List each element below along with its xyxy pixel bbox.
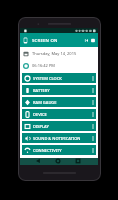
button[interactable]: SCREEN ON [20, 33, 98, 47]
button[interactable]: DEVICE [22, 109, 96, 119]
button[interactable]: RAM GAUGE [22, 97, 96, 107]
staticText: SOUND & NOTIFICATION [33, 136, 81, 141]
button[interactable]: Pause [84, 36, 89, 45]
staticText: BATTERY [33, 88, 50, 93]
staticText: DISPLAY [33, 124, 49, 129]
staticText: 06:16:42 PM [32, 63, 55, 68]
staticText: DEVICE [33, 112, 47, 117]
staticText: Thursday, May 14, 2015 [32, 51, 77, 56]
button[interactable]: BATTERY [22, 85, 96, 95]
staticText: SCREEN ON [32, 37, 58, 43]
button[interactable]: Thursday, May 14, 2015 [20, 47, 98, 60]
button[interactable]: SYSTEM CLOCK [22, 73, 96, 83]
button[interactable]: More options [90, 36, 96, 45]
button[interactable]: DISPLAY [22, 121, 96, 131]
button[interactable]: SOUND & NOTIFICATION [22, 133, 96, 143]
staticText: SYSTEM CLOCK [33, 76, 62, 81]
button[interactable]: 06:16:42 PM [20, 59, 98, 72]
staticText: RAM GAUGE [33, 100, 57, 105]
button[interactable]: CONNECTIVITY [22, 145, 96, 155]
staticText: CONNECTIVITY [33, 148, 62, 153]
